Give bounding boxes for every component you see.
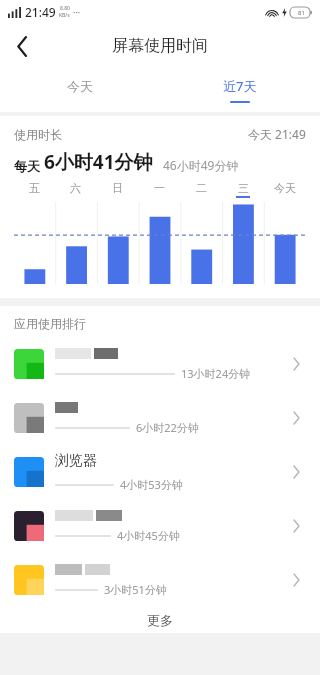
staticText: 应用使用排行 [14,316,86,331]
button[interactable]: 3小时51分钟 [0,553,320,607]
staticText: 3小时51分钟 [104,582,167,597]
staticText: 六 [70,181,81,195]
staticText: 今天 [274,181,296,195]
other: Details [286,354,306,374]
staticText: 浏览器 [55,452,97,470]
staticText: 三 [238,181,249,195]
staticText: 8.80 [60,5,70,12]
staticText: 4小时53分钟 [120,477,183,492]
other: Details [286,516,306,536]
staticText: 每天 [14,157,44,175]
staticText: 一 [154,181,165,195]
staticText: 81 [298,9,305,17]
staticText: 46小时49分钟 [163,157,239,173]
staticText: 今天 21:49 [248,126,306,142]
staticText: 屏幕使用时间 [112,36,208,56]
staticText: 五 [29,181,40,195]
staticText: 日 [112,181,123,195]
staticText: 今天 [67,78,93,94]
staticText: 6小时22分钟 [136,420,199,435]
other: Details [286,570,306,590]
staticText: 使用时长 [14,127,62,142]
button[interactable]: 浏览器 [0,445,320,499]
staticText: 二 [196,181,207,195]
staticText: 4小时45分钟 [117,528,180,543]
staticText: 更多 [147,612,173,628]
button[interactable]: 13小时24分钟 [0,337,320,391]
staticText: 13小时24分钟 [181,366,251,381]
button[interactable]: 更多 [0,607,320,633]
button[interactable]: 近7天 [160,68,320,112]
staticText: ··· [73,6,81,18]
button[interactable]: Back [0,24,44,68]
button[interactable]: 4小时45分钟 [0,499,320,553]
staticText: 近7天 [223,77,257,95]
staticText: KB/s [59,12,70,19]
staticText: 6小时41分钟 [44,149,153,175]
button[interactable]: 6小时22分钟 [0,391,320,445]
other: Details [286,408,306,428]
other: Details [286,462,306,482]
staticText: 21:49 [25,4,56,20]
button[interactable]: 今天 [0,68,160,112]
